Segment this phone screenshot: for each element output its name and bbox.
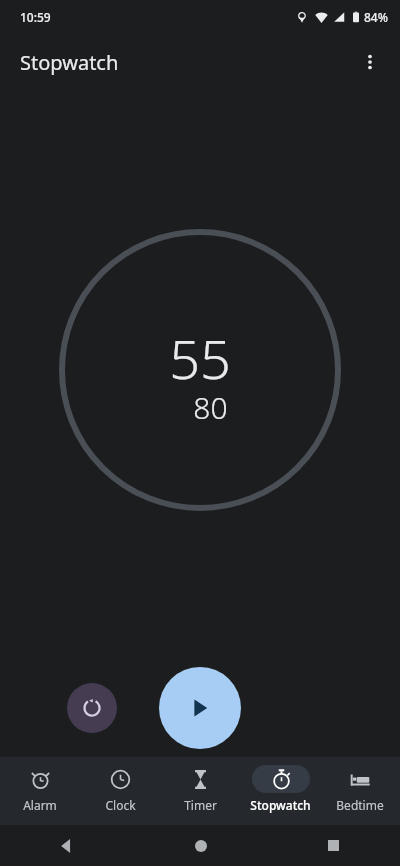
button[interactable]: More options bbox=[348, 40, 392, 84]
staticText: 55 bbox=[169, 321, 231, 395]
button[interactable]: Stopwatch bbox=[240, 757, 320, 825]
staticText: Bedtime bbox=[336, 797, 384, 813]
button[interactable]: Bedtime bbox=[320, 757, 400, 825]
staticText: Stopwatch bbox=[250, 797, 311, 813]
staticText: 84% bbox=[364, 9, 388, 25]
button[interactable]: Home bbox=[134, 825, 267, 866]
staticText: Clock bbox=[105, 797, 136, 813]
button[interactable]: Clock bbox=[80, 757, 160, 825]
staticText: 80 bbox=[193, 387, 228, 428]
staticText: Stopwatch bbox=[20, 49, 119, 76]
staticText: Timer bbox=[184, 797, 217, 813]
button[interactable]: Timer bbox=[160, 757, 240, 825]
staticText: 10:59 bbox=[20, 9, 51, 25]
button[interactable]: Back bbox=[0, 825, 134, 866]
button[interactable]: Start bbox=[159, 667, 241, 749]
button[interactable]: Alarm bbox=[0, 757, 80, 825]
button[interactable]: Recent apps bbox=[267, 825, 400, 866]
button[interactable]: Reset bbox=[67, 683, 117, 733]
staticText: Alarm bbox=[23, 797, 57, 813]
